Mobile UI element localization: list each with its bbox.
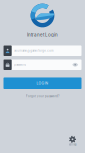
button[interactable]: password [3, 59, 81, 70]
button[interactable]: yourname@gamelforge.com [3, 45, 81, 56]
button[interactable]: Settings [68, 136, 76, 146]
button[interactable]: LOGIN [3, 77, 81, 89]
staticText: yourname@gamelforge.com [14, 49, 53, 52]
button[interactable]: Forgot your password? [26, 94, 59, 98]
staticText: Intranet Login [27, 32, 58, 37]
staticText: password [14, 63, 26, 66]
staticText: Forgot your password? [26, 94, 59, 98]
staticText: settings [68, 143, 76, 146]
staticText: LOGIN [36, 81, 48, 85]
